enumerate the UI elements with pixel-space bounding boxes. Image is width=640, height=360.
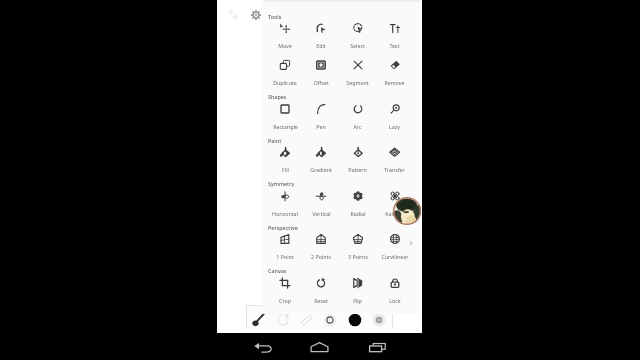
staticText: Pattern [348, 166, 367, 173]
button[interactable]: Pen [303, 97, 339, 134]
staticText: Text [389, 42, 400, 49]
button[interactable]: Segment [339, 53, 376, 90]
staticText: Reset [314, 297, 328, 304]
button[interactable]: Crop [267, 271, 303, 308]
staticText: Curvilinear [381, 253, 409, 260]
button[interactable]: Profile [393, 197, 421, 225]
staticText: Remove [384, 79, 405, 86]
button[interactable]: Home [301, 334, 337, 360]
staticText: Horizontal [272, 210, 298, 217]
button[interactable]: Opacity [372, 313, 386, 327]
staticText: 1 Point [276, 253, 294, 260]
button[interactable]: Pattern [339, 140, 376, 177]
button[interactable]: Flip [339, 271, 376, 308]
button[interactable]: Fill [267, 140, 303, 177]
staticText: Lock [389, 297, 401, 304]
button[interactable]: Remove [376, 53, 413, 90]
staticText: 3 Points [348, 253, 368, 260]
button[interactable]: Black colour [348, 313, 362, 327]
button[interactable]: Move [267, 16, 303, 53]
button[interactable]: Arc [339, 97, 376, 134]
button[interactable]: Undo [276, 313, 290, 327]
staticText: Symmetry [268, 180, 295, 187]
button[interactable]: 1 Point [267, 227, 303, 264]
button[interactable]: Curvilinear [376, 227, 413, 264]
button[interactable]: Duplicate [267, 53, 303, 90]
button[interactable]: Offset [303, 53, 339, 90]
button[interactable]: Settings [251, 10, 261, 20]
staticText: Radial [350, 210, 366, 217]
staticText: Segment [346, 79, 369, 86]
staticText: Gradient [310, 166, 332, 173]
button[interactable]: Text [376, 16, 413, 53]
button[interactable]: Brush [251, 313, 265, 327]
button[interactable]: 2 Points [303, 227, 339, 264]
staticText: Select [350, 42, 365, 49]
staticText: Shapes [268, 93, 287, 100]
button[interactable]: Gradient [303, 140, 339, 177]
staticText: Vertical [312, 210, 331, 217]
staticText: 2 Points [311, 253, 331, 260]
button[interactable]: Transfer [376, 140, 413, 177]
staticText: Tools [268, 13, 282, 20]
button[interactable]: Lock [376, 271, 413, 308]
button[interactable]: Brush size [323, 313, 337, 327]
staticText: Duplicate [273, 79, 297, 86]
button[interactable]: Radial [339, 184, 376, 221]
button[interactable]: Edit [303, 16, 339, 53]
button[interactable]: Reset [303, 271, 339, 308]
staticText: Paint [268, 137, 282, 144]
staticText: Rectangle [273, 123, 298, 130]
staticText: Pen [316, 123, 326, 130]
staticText: Transfer [384, 166, 405, 173]
staticText: Lazy [389, 123, 400, 130]
button[interactable]: Vertical [303, 184, 339, 221]
button[interactable]: Eraser [299, 313, 313, 327]
staticText: Offset [313, 79, 329, 86]
button[interactable]: Kaleido [376, 184, 413, 221]
staticText: Edit [316, 42, 326, 49]
staticText: Fill [282, 166, 289, 173]
staticText: Canvas [268, 267, 287, 274]
button[interactable]: Recents [360, 334, 396, 360]
staticText: Crop [279, 297, 291, 304]
button[interactable]: Lazy [376, 97, 413, 134]
staticText: Perspective [268, 224, 298, 231]
button[interactable]: Horizontal [267, 184, 303, 221]
button[interactable]: Back [245, 334, 281, 360]
staticText: Move [278, 42, 292, 49]
staticText: Arc [353, 123, 362, 130]
button[interactable]: Rectangle [267, 97, 303, 134]
button[interactable]: 3 Points [339, 227, 376, 264]
staticText: Kaleido [385, 210, 404, 217]
button[interactable]: Select [339, 16, 376, 53]
staticText: Flip [353, 297, 362, 304]
